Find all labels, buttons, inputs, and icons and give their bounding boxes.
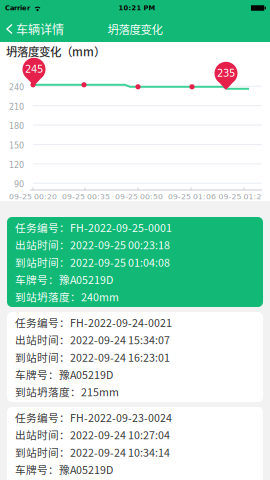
button[interactable]: 任务编号：FH-2022-09-25-0001 <box>7 217 263 307</box>
staticText: 车牌号：豫A05219D <box>15 272 113 287</box>
staticText: 120 <box>9 160 24 170</box>
staticText: 任务编号：FH-2022-09-25-0001 <box>15 220 172 235</box>
staticText: 到站坍落度：215mm <box>15 384 119 399</box>
staticText: 到站时间：2022-09-24 10:34:14 <box>15 444 170 460</box>
staticText: 09-25 01:2 <box>218 192 261 201</box>
staticText: 车牌号：豫A05219D <box>15 462 113 477</box>
staticText: Carrier <box>5 4 30 12</box>
staticText: 出站时间：2022-09-25 00:23:18 <box>15 237 170 252</box>
staticText: 出站时间：2022-09-24 10:27:04 <box>15 427 170 442</box>
staticText: 90 <box>14 180 24 189</box>
staticText: 车辆详情 <box>16 20 64 38</box>
staticText: 坍落度变化（mm） <box>6 43 105 60</box>
staticText: 车牌号：豫A05219D <box>15 367 113 382</box>
staticText: 到站时间：2022-09-25 01:04:08 <box>15 254 170 270</box>
button[interactable]: 任务编号：FH-2022-09-24-0021 <box>7 312 263 402</box>
staticText: 到站时间：2022-09-24 16:23:01 <box>15 349 170 365</box>
staticText: 150 <box>9 141 24 150</box>
staticText: 任务编号：FH-2022-09-23-0024 <box>15 410 172 425</box>
staticText: 245 <box>25 63 43 75</box>
button[interactable]: 车辆详情 <box>0 16 71 42</box>
staticText: 10:21 PM <box>118 4 155 12</box>
staticText: 任务编号：FH-2022-09-24-0021 <box>15 315 172 330</box>
staticText: 09-25 00:35 <box>62 192 110 201</box>
staticText: 09-25 00:50 <box>115 192 163 201</box>
button[interactable]: 任务编号：FH-2022-09-23-0024 <box>7 407 263 480</box>
staticText: 09-25 01:06 <box>168 192 216 201</box>
staticText: 坍落度变化 <box>107 21 162 37</box>
staticText: 出站时间：2022-09-24 15:34:07 <box>15 332 170 347</box>
staticText: 180 <box>9 122 24 131</box>
staticText: 240 <box>9 83 24 92</box>
staticText: 210 <box>9 102 24 112</box>
staticText: 235 <box>217 67 235 79</box>
staticText: 09-25 00:20 <box>9 192 57 201</box>
staticText: 到站坍落度：240mm <box>15 289 119 304</box>
